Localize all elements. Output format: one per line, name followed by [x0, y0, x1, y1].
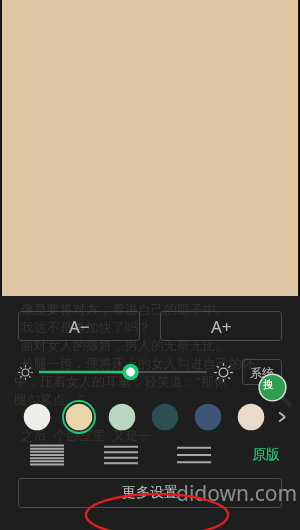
staticText: 中，压着女人的耳垂，轻笑道：“那你 — [14, 372, 227, 390]
staticText: 之后 个卧室里 又是一 — [14, 426, 152, 444]
button[interactable]: Theme color 2 — [62, 400, 96, 434]
button[interactable]: Brightness — [39, 359, 207, 385]
button[interactable]: Line spacing 3 — [177, 444, 211, 466]
staticText: A− — [69, 315, 90, 338]
staticText: 系统 — [250, 365, 274, 380]
staticText: 搜 — [263, 378, 273, 391]
staticText: 面对女人的撒娇，男人的无奈无比。 — [14, 336, 229, 354]
button[interactable]: Theme color 1 — [20, 400, 54, 434]
button[interactable]: Theme color 3 — [105, 400, 139, 434]
button[interactable]: Line spacing 7 — [30, 444, 64, 466]
staticText: 我这不是再加快了吗？ — [14, 318, 151, 336]
button[interactable]: Line spacing 4 — [104, 444, 138, 466]
button[interactable]: 原版 — [250, 444, 282, 466]
button[interactable]: 更多设置 — [18, 478, 282, 508]
button[interactable]: Theme color 6 — [234, 400, 268, 434]
button[interactable]: More colors — [272, 407, 292, 427]
button[interactable]: A+ — [160, 311, 282, 341]
staticText: A+ — [211, 315, 232, 338]
button[interactable]: Search — [259, 374, 289, 404]
staticText: 像是要将对方，看进自己的眼子中。 — [14, 300, 229, 318]
button[interactable]: Theme color 4 — [148, 400, 182, 434]
button[interactable]: Theme color 5 — [191, 400, 225, 434]
staticText: 长腿一跨，便将床上的女人勾进自己的怀 — [14, 354, 255, 372]
staticText: 原版 — [252, 446, 280, 464]
button[interactable]: 系统 — [242, 359, 282, 385]
staticText: 更多设置 — [122, 484, 178, 502]
button[interactable]: A− — [18, 311, 140, 341]
staticText: 腿勾紧点。” — [14, 390, 84, 408]
staticText: didown.com — [176, 479, 298, 508]
